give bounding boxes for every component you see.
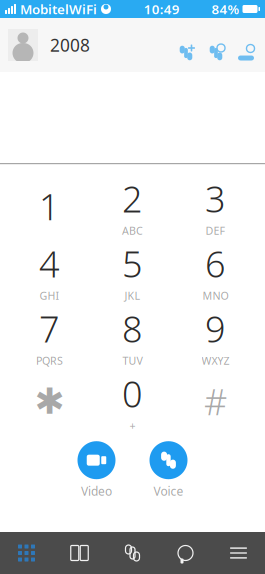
button[interactable]: 3 [178, 178, 252, 234]
staticText: 5 [122, 240, 143, 287]
button[interactable]: 8 [95, 308, 169, 364]
staticText: 6 [205, 240, 226, 287]
staticText: 84% [211, 0, 239, 18]
staticText: MobitelWiFi [20, 0, 97, 18]
button[interactable]: Messages [159, 532, 212, 574]
staticText: 7 [39, 305, 60, 352]
staticText: GHI [39, 288, 59, 303]
button[interactable]: 4 [12, 243, 86, 299]
staticText: 8 [122, 305, 143, 352]
button[interactable]: Keypad [0, 532, 53, 574]
button[interactable]: Contacts [53, 532, 106, 574]
staticText: 2008 [50, 33, 90, 56]
staticText: ABC [122, 223, 143, 238]
button[interactable]: 1 [12, 178, 86, 234]
staticText: 2 [122, 175, 143, 222]
staticText: 3 [205, 175, 226, 222]
staticText: ✱ [34, 381, 64, 422]
staticText: PQRS [36, 353, 63, 368]
button[interactable]: Call history [235, 42, 257, 64]
staticText: Video [81, 483, 112, 499]
staticText: WXYZ [201, 353, 229, 368]
button[interactable]: 9 [178, 308, 252, 364]
button[interactable]: 6 [178, 243, 252, 299]
staticText: # [204, 377, 227, 425]
button[interactable]: Recents [106, 532, 159, 574]
button[interactable]: Video [69, 441, 123, 499]
button[interactable]: Add call [175, 42, 197, 64]
staticText: JKL [124, 288, 140, 303]
staticText: Voice [153, 483, 183, 499]
staticText: 0 [122, 370, 143, 417]
button[interactable]: ✱ [12, 373, 86, 429]
staticText: 10:49 [144, 0, 180, 18]
staticText: MNO [202, 288, 228, 303]
button[interactable]: 5 [95, 243, 169, 299]
button[interactable]: Voice [141, 441, 195, 499]
button[interactable]: 2 [95, 178, 169, 234]
button[interactable]: 0 [95, 373, 169, 429]
staticText: 1 [39, 182, 60, 230]
button[interactable]: More [212, 532, 265, 574]
button[interactable]: # [178, 373, 252, 429]
button[interactable]: Call with message [205, 42, 227, 64]
staticText: TUV [122, 353, 142, 368]
staticText: 9 [205, 305, 226, 352]
button[interactable]: 7 [12, 308, 86, 364]
staticText: DEF [205, 223, 225, 238]
staticText: + [129, 418, 135, 433]
staticText: 4 [39, 240, 60, 287]
